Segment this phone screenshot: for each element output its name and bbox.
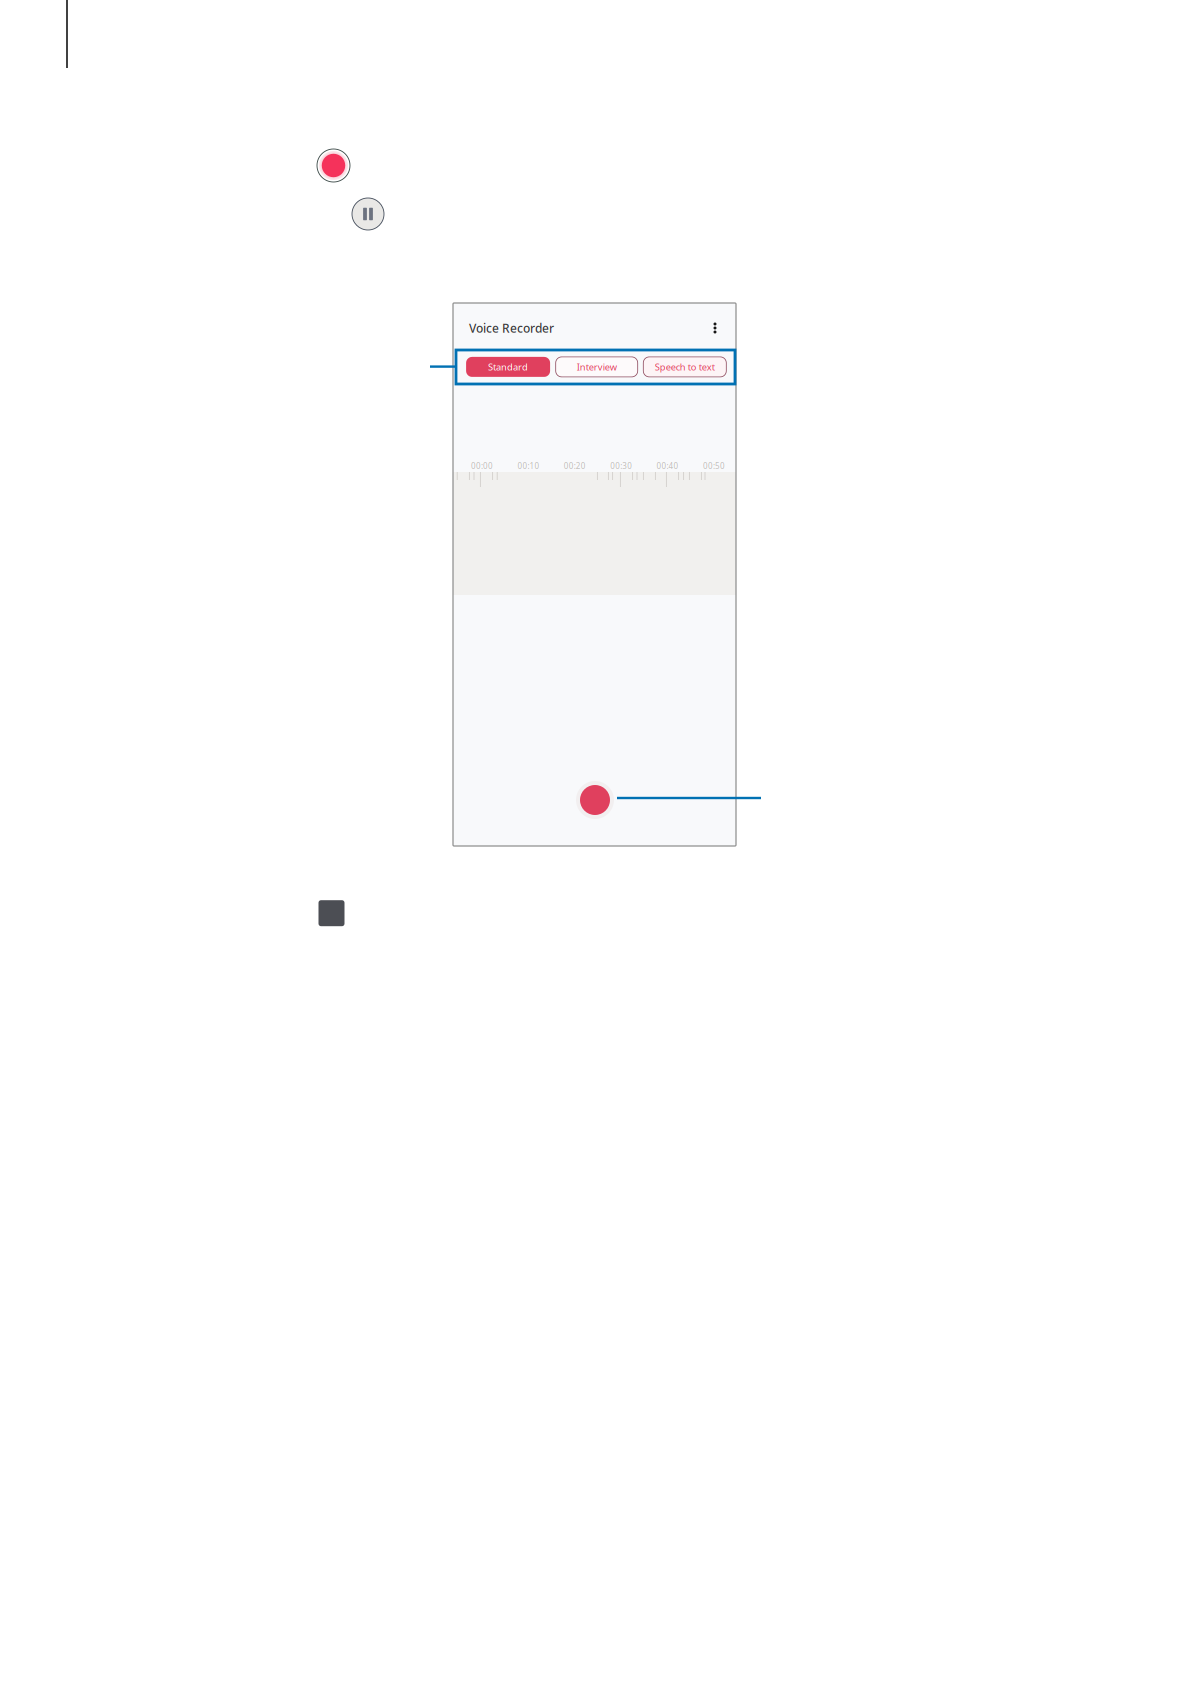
staticText: 00:10 (517, 461, 539, 471)
staticText: Voice Recorder (469, 320, 554, 336)
button[interactable]: Stop (318, 900, 344, 926)
staticText: Speech to text (655, 361, 715, 373)
button[interactable]: Standard (466, 357, 550, 377)
staticText: 00:30 (610, 461, 632, 471)
staticText: 00:00 (471, 461, 493, 471)
button[interactable]: Record (316, 148, 351, 183)
button[interactable]: Speech to text (643, 357, 726, 377)
staticText: 00:20 (564, 461, 586, 471)
staticText: Standard (488, 361, 528, 373)
staticText: Interview (577, 361, 617, 373)
button[interactable]: Start recording (575, 780, 615, 820)
button[interactable]: Pause (351, 197, 385, 231)
staticText: 00:40 (657, 461, 679, 471)
staticText: 00:50 (703, 461, 725, 471)
button[interactable]: More options (705, 317, 725, 339)
button[interactable]: Interview (556, 357, 638, 377)
